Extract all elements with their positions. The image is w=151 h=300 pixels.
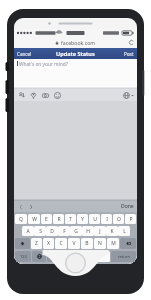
- button[interactable]: F: [58, 226, 70, 236]
- button[interactable]: Shift: [15, 238, 30, 249]
- staticText: C: [59, 240, 63, 247]
- staticText: D: [50, 228, 54, 235]
- button[interactable]: K: [106, 226, 118, 236]
- staticText: Y: [81, 216, 84, 223]
- staticText: V: [72, 240, 76, 247]
- staticText: O: [117, 216, 121, 223]
- button[interactable]: N: [94, 238, 106, 249]
- button[interactable]: Check in: [29, 91, 37, 99]
- staticText: J: [99, 228, 101, 235]
- other: Reload: [129, 40, 134, 45]
- staticText: E: [45, 216, 48, 223]
- button[interactable]: Audience selector: [122, 91, 130, 99]
- staticText: H: [86, 228, 90, 235]
- button[interactable]: Y: [77, 214, 88, 224]
- staticText: I: [106, 216, 108, 223]
- staticText: F: [63, 228, 66, 235]
- staticText: R: [57, 216, 61, 223]
- button[interactable]: space: [62, 251, 110, 262]
- staticText: Cancel: [17, 51, 32, 57]
- staticText: Done: [121, 203, 134, 210]
- button[interactable]: Backspace: [120, 238, 136, 249]
- button[interactable]: O: [113, 214, 124, 224]
- button[interactable]: J: [94, 226, 106, 236]
- button[interactable]: A: [22, 226, 34, 236]
- button[interactable]: Dictation: [47, 251, 61, 262]
- staticText: U: [93, 216, 97, 223]
- button[interactable]: U: [89, 214, 100, 224]
- button[interactable]: Photo: [41, 91, 49, 99]
- button[interactable]: 123: [15, 251, 31, 262]
- staticText: X: [47, 240, 50, 247]
- staticText: N: [98, 240, 102, 247]
- button[interactable]: G: [70, 226, 82, 236]
- button[interactable]: Emoji / language: [32, 251, 46, 262]
- button[interactable]: Cancel: [17, 48, 32, 59]
- button[interactable]: V: [68, 238, 80, 249]
- button[interactable]: Post: [124, 48, 134, 59]
- staticText: K: [110, 228, 114, 235]
- button[interactable]: Feeling: [53, 91, 61, 99]
- staticText: L: [123, 228, 126, 235]
- staticText: What's on your mind?: [19, 61, 68, 68]
- staticText: 123: [20, 254, 27, 259]
- staticText: P: [129, 216, 133, 223]
- button[interactable]: H: [82, 226, 94, 236]
- button[interactable]: B: [81, 238, 93, 249]
- button[interactable]: Next field: [27, 203, 34, 210]
- button[interactable]: Tag people: [17, 91, 25, 99]
- button[interactable]: T: [65, 214, 76, 224]
- staticText: G: [74, 228, 78, 235]
- button[interactable]: return: [111, 251, 136, 262]
- staticText: B: [85, 240, 89, 247]
- staticText: Q: [19, 216, 23, 223]
- button[interactable]: D: [46, 226, 58, 236]
- staticText: T: [69, 216, 72, 223]
- button[interactable]: S: [34, 226, 46, 236]
- staticText: return: [118, 254, 130, 259]
- staticText: M: [111, 240, 116, 247]
- button[interactable]: Z: [31, 238, 42, 249]
- button[interactable]: E: [41, 214, 52, 224]
- button[interactable]: P: [125, 214, 136, 224]
- staticText: W: [32, 216, 37, 223]
- button[interactable]: What's on your mind?: [14, 59, 137, 88]
- staticText: A: [26, 228, 30, 235]
- button[interactable]: C: [55, 238, 67, 249]
- button[interactable]: Q: [15, 214, 27, 224]
- staticText: Update Status: [56, 50, 95, 58]
- button[interactable]: L: [118, 226, 130, 236]
- staticText: facebook.com: [61, 39, 96, 46]
- button[interactable]: R: [53, 214, 64, 224]
- staticText: S: [39, 228, 42, 235]
- staticText: Post: [124, 51, 134, 57]
- staticText: space: [80, 254, 92, 260]
- button[interactable]: Address bar facebook.com: [14, 37, 137, 48]
- button[interactable]: W: [28, 214, 40, 224]
- button[interactable]: X: [43, 238, 54, 249]
- button[interactable]: Previous field: [17, 203, 24, 210]
- button[interactable]: I: [101, 214, 112, 224]
- staticText: Z: [35, 240, 38, 247]
- button[interactable]: M: [107, 238, 119, 249]
- button[interactable]: Done: [121, 200, 134, 212]
